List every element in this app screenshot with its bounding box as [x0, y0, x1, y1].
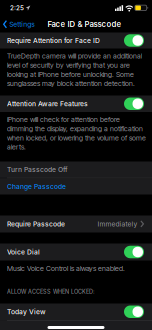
- staticText: Today View: [7, 308, 46, 316]
- button[interactable]: Attention Aware Features: [124, 97, 144, 110]
- staticText: Attention Aware Features: [7, 100, 88, 108]
- staticText: Change Passcode: [7, 182, 66, 190]
- button[interactable]: Change Passcode: [0, 178, 152, 194]
- button[interactable]: Today View: [124, 305, 144, 318]
- staticText: iPhone will check for attention before d…: [7, 115, 146, 152]
- staticText: TrueDepth camera will provide an additio…: [7, 51, 142, 88]
- staticText: Require Passcode: [7, 220, 65, 228]
- button[interactable]: Require Passcode: [0, 215, 152, 232]
- staticText: Face ID & Passcode: [47, 19, 121, 29]
- staticText: Music Voice Control is always enabled.: [7, 264, 125, 273]
- button[interactable]: Voice Dial: [124, 246, 144, 258]
- staticText: 2:25: [10, 4, 24, 12]
- staticText: Turn Passcode Off: [7, 165, 68, 174]
- staticText: Voice Dial: [7, 248, 40, 256]
- button[interactable]: Require Attention for Face ID: [124, 34, 144, 47]
- staticText: Immediately: [97, 220, 137, 228]
- staticText: Require Attention for Face ID: [7, 36, 100, 44]
- staticText: Settings: [9, 20, 35, 28]
- staticText: ALLOW ACCESS WHEN LOCKED:: [7, 288, 95, 295]
- button[interactable]: Back to Settings: [0, 20, 35, 28]
- button[interactable]: Turn Passcode Off: [0, 161, 152, 178]
